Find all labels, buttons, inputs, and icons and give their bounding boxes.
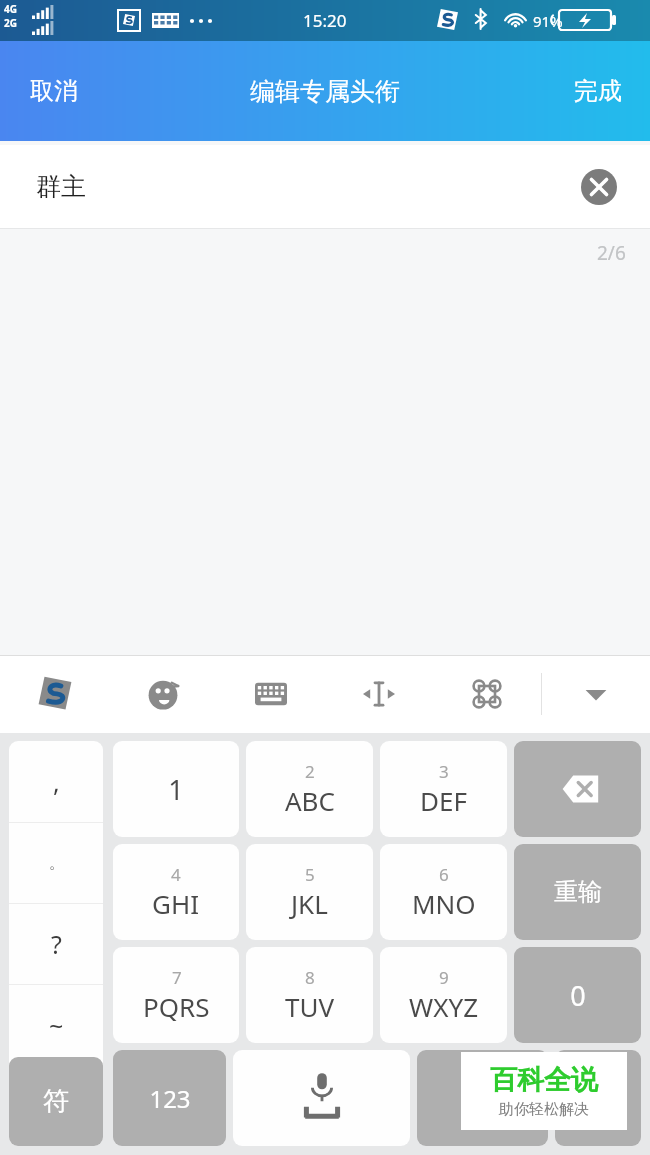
button[interactable]: Sogou input	[0, 655, 109, 733]
staticText: GHI	[152, 886, 200, 921]
staticText: 符	[43, 1085, 69, 1118]
staticText: 重输	[554, 877, 602, 907]
staticText: 4G	[4, 2, 17, 16]
button[interactable]: ?	[9, 904, 103, 984]
staticText: 。	[49, 854, 64, 873]
staticText: 91%	[533, 11, 563, 31]
button[interactable]: Move cursor	[325, 655, 433, 733]
staticText: DEF	[420, 783, 467, 818]
button[interactable]: Backspace	[514, 741, 641, 837]
button[interactable]: Enter	[555, 1050, 641, 1146]
button[interactable]: ~	[9, 985, 103, 1065]
button[interactable]: 重输	[514, 844, 641, 940]
staticText: 助你轻松解决	[499, 1100, 589, 1119]
staticText: 群主	[36, 171, 86, 202]
button[interactable]: Keyboard layout	[217, 655, 325, 733]
button[interactable]: DEF	[380, 741, 507, 837]
staticText: PQRS	[143, 989, 210, 1024]
staticText: ~	[49, 1008, 64, 1042]
staticText: 3	[439, 760, 449, 783]
button[interactable]: 完成	[546, 54, 650, 128]
staticText: 4	[171, 863, 181, 886]
staticText: 15:20	[303, 9, 347, 32]
staticText: 5	[305, 863, 315, 886]
staticText: ?	[51, 927, 62, 961]
staticText: 中	[469, 1081, 496, 1115]
staticText: 8	[305, 966, 315, 989]
staticText: 9	[439, 966, 449, 989]
staticText: 取消	[30, 76, 78, 106]
button[interactable]: Clear text	[581, 169, 617, 205]
button[interactable]: Hide keyboard	[542, 655, 650, 733]
staticText: 2	[305, 760, 315, 783]
button[interactable]: 取消	[0, 54, 108, 128]
button[interactable]: ,	[9, 741, 103, 822]
staticText: 编辑专属头衔	[250, 76, 400, 107]
button[interactable]: 中	[417, 1050, 548, 1146]
staticText: 2G	[4, 16, 17, 30]
button[interactable]: ABC	[246, 741, 373, 837]
staticText: 6	[439, 863, 449, 886]
button[interactable]: MNO	[380, 844, 507, 940]
button[interactable]: 0	[514, 947, 641, 1043]
button[interactable]: TUV	[246, 947, 373, 1043]
button[interactable]: 123	[113, 1050, 226, 1146]
staticText: 123	[149, 1082, 191, 1115]
button[interactable]: WXYZ	[380, 947, 507, 1043]
button[interactable]: 群主	[0, 145, 650, 228]
button[interactable]: Emoji	[109, 655, 217, 733]
staticText: 完成	[574, 76, 622, 106]
staticText: 1	[168, 771, 184, 808]
button[interactable]: PQRS	[113, 947, 239, 1043]
button[interactable]: 1	[113, 741, 239, 837]
staticText: TUV	[285, 989, 335, 1024]
button[interactable]: Shortcuts	[433, 655, 541, 733]
staticText: 0	[570, 977, 586, 1014]
staticText: ABC	[285, 783, 335, 818]
staticText: ,	[53, 765, 60, 799]
button[interactable]: JKL	[246, 844, 373, 940]
button[interactable]: Space and voice input	[233, 1050, 410, 1146]
staticText: MNO	[412, 886, 476, 921]
staticText: 7	[172, 966, 182, 989]
staticText: 2/6	[597, 240, 626, 266]
staticText: WXYZ	[409, 989, 479, 1024]
staticText: JKL	[291, 886, 328, 921]
staticText: 百科全说	[490, 1063, 598, 1097]
button[interactable]: 符	[9, 1057, 103, 1146]
button[interactable]: GHI	[113, 844, 239, 940]
button[interactable]	[9, 1066, 103, 1146]
